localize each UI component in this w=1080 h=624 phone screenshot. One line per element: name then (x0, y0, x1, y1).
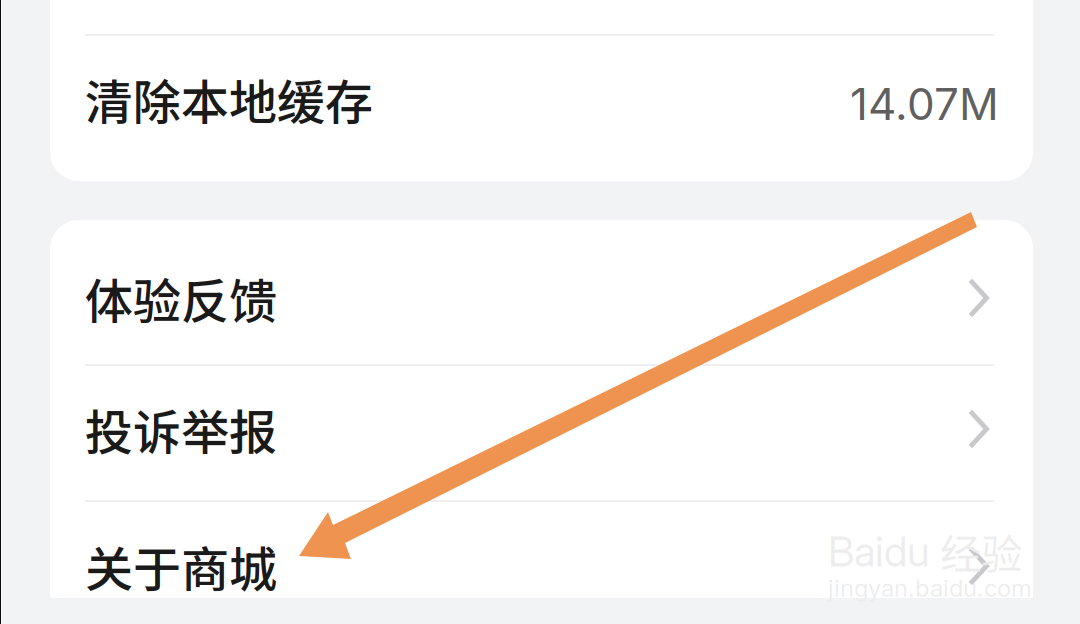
staticText: 经验 (940, 522, 1022, 581)
staticText: 14.07M (850, 77, 999, 131)
staticText: Baidu (828, 526, 930, 576)
button[interactable]: 关于商城 (50, 502, 1033, 624)
button[interactable]: 体验反馈 (50, 220, 1033, 364)
button[interactable]: 投诉举报 (50, 366, 1033, 500)
staticText: 清除本地缓存 (85, 64, 373, 134)
staticText: 投诉举报 (85, 394, 277, 464)
staticText: jingyan.baidu.com (828, 573, 1032, 602)
staticText: 体验反馈 (85, 263, 277, 333)
button[interactable]: 清除本地缓存 (50, 36, 1033, 166)
staticText: 关于商城 (85, 531, 277, 601)
